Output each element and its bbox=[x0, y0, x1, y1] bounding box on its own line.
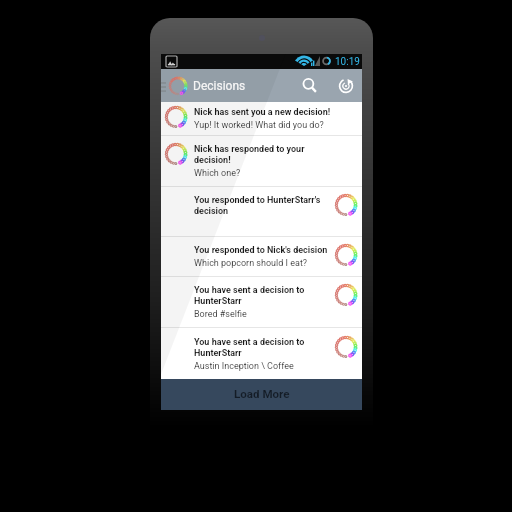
button[interactable]: Open navigation menu bbox=[161, 69, 169, 102]
staticText: You have sent a decision to HunterStarr bbox=[194, 285, 332, 307]
staticText: Yup! It worked! What did you do? bbox=[194, 120, 324, 131]
staticText: Decisions bbox=[193, 79, 246, 93]
button[interactable]: Refresh bbox=[329, 69, 362, 102]
staticText: You have sent a decision to HunterStarr bbox=[194, 337, 332, 359]
staticText: Load More bbox=[234, 387, 290, 401]
staticText: You responded to HunterStarr's decision bbox=[194, 195, 332, 217]
staticText: You responded to Nick's decision bbox=[194, 245, 328, 256]
button[interactable]: You have sent a decision to HunterStarr bbox=[161, 328, 362, 379]
staticText: Bored #selfie bbox=[194, 309, 247, 320]
staticText: Nick has responded to your decision! bbox=[194, 144, 332, 166]
button[interactable]: Nick has responded to your decision! bbox=[161, 136, 362, 186]
button[interactable]: Nick has sent you a new decision! bbox=[161, 102, 362, 135]
staticText: Austin Inception \ Coffee bbox=[194, 361, 294, 372]
button[interactable]: You responded to HunterStarr's decision bbox=[161, 187, 362, 236]
button[interactable]: You have sent a decision to HunterStarr bbox=[161, 277, 362, 327]
button[interactable]: Search bbox=[294, 69, 326, 102]
button[interactable]: Load More bbox=[161, 379, 362, 410]
button[interactable]: You responded to Nick's decision bbox=[161, 237, 362, 276]
staticText: Which one? bbox=[194, 168, 241, 179]
staticText: 10:19 bbox=[335, 56, 360, 68]
staticText: Nick has sent you a new decision! bbox=[194, 107, 331, 118]
staticText: Which popcorn should I eat? bbox=[194, 258, 308, 269]
